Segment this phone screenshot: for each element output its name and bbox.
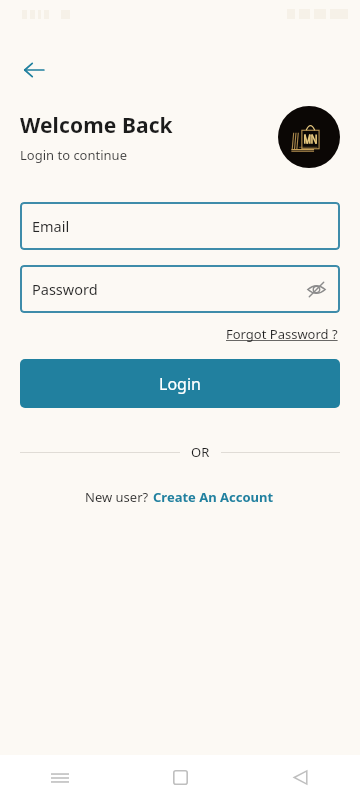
button[interactable]: Login [20, 359, 340, 408]
staticText: New user? [85, 488, 152, 506]
button[interactable]: Back [12, 48, 56, 92]
button[interactable]: Recent apps [0, 755, 120, 800]
staticText: Password [32, 279, 98, 299]
button[interactable]: App logo [278, 106, 340, 168]
button[interactable]: Back [240, 755, 360, 800]
staticText: OR [191, 443, 210, 461]
button[interactable]: Create An Account [152, 486, 275, 508]
staticText: Login to continue [20, 146, 127, 164]
staticText: Login [159, 373, 201, 395]
staticText: Forgot Password ? [226, 325, 338, 343]
button[interactable]: Forgot Password ? [224, 323, 340, 345]
button[interactable]: Password [20, 265, 340, 313]
button[interactable]: Email [20, 202, 340, 250]
staticText: Create An Account [153, 488, 274, 506]
button[interactable]: Home [120, 755, 240, 800]
staticText: Welcome Back [20, 111, 173, 140]
staticText: Email [32, 216, 70, 236]
button[interactable]: Show password [300, 273, 332, 305]
